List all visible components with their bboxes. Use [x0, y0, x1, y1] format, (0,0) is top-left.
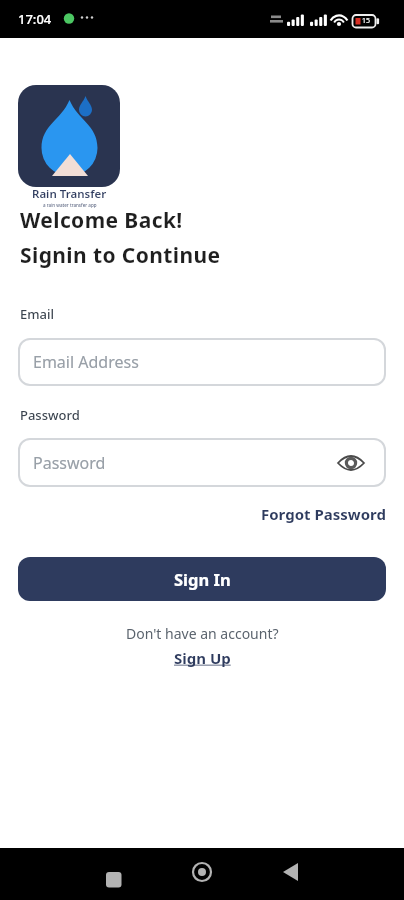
button[interactable] — [275, 856, 307, 888]
button[interactable]: Sign Up — [174, 648, 231, 668]
staticText: 15 — [362, 16, 371, 26]
button[interactable]: Email Address — [18, 338, 386, 386]
button[interactable]: Forgot Password — [261, 504, 386, 524]
staticText: Password — [20, 406, 80, 424]
staticText: Welcome Back! — [20, 206, 183, 235]
button[interactable]: Sign In — [18, 557, 386, 601]
button[interactable]: Password — [18, 438, 386, 487]
staticText: Email Address — [33, 351, 139, 373]
staticText: Password — [33, 452, 106, 474]
staticText: Email — [20, 305, 55, 323]
staticText: Signin to Continue — [20, 241, 221, 270]
button[interactable] — [18, 85, 120, 187]
button[interactable] — [98, 864, 130, 896]
button[interactable] — [186, 856, 218, 888]
button[interactable] — [337, 453, 365, 473]
staticText: 17:04 — [18, 10, 52, 28]
staticText: a rain water transfer app — [43, 202, 97, 208]
staticText: Don't have an account? — [126, 624, 279, 643]
staticText: Rain Transfer — [32, 186, 107, 202]
staticText: Sign In — [174, 568, 231, 590]
